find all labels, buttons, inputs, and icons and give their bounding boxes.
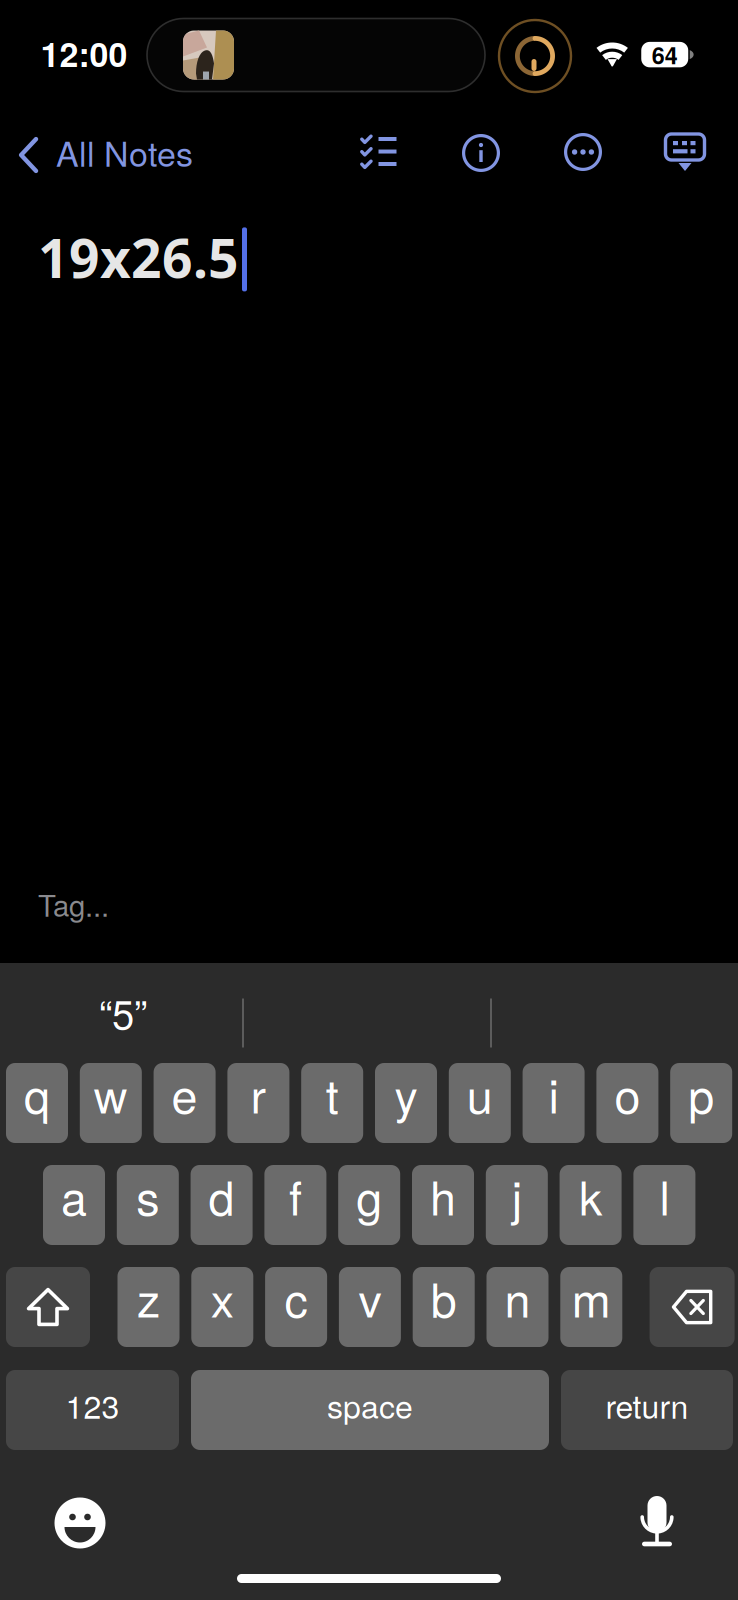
button[interactable]: f [264, 1165, 326, 1245]
button[interactable]: c [265, 1267, 327, 1347]
button[interactable]: e [154, 1063, 216, 1143]
staticText: f [289, 1162, 302, 1229]
staticText: l [659, 1162, 669, 1229]
button[interactable]: h [412, 1165, 474, 1245]
button[interactable]: Info [447, 121, 515, 185]
button[interactable]: y [375, 1063, 437, 1143]
button[interactable]: g [338, 1165, 400, 1245]
staticText: return [605, 1382, 688, 1428]
staticText: 19x26.5 [38, 222, 239, 293]
button[interactable]: t [301, 1063, 363, 1143]
button[interactable]: Checklist [345, 120, 413, 184]
staticText: w [94, 1060, 128, 1127]
staticText: v [358, 1264, 381, 1331]
staticText: r [250, 1060, 266, 1127]
button[interactable]: z [117, 1267, 179, 1347]
button[interactable]: u [449, 1063, 511, 1143]
staticText: 123 [65, 1382, 119, 1428]
staticText: q [24, 1060, 50, 1127]
button[interactable]: s [117, 1165, 179, 1245]
button[interactable]: v [339, 1267, 401, 1347]
button[interactable]: m [560, 1267, 622, 1347]
staticText: j [512, 1162, 522, 1229]
staticText: 64 [652, 38, 678, 71]
button[interactable]: n [486, 1267, 548, 1347]
staticText: h [430, 1162, 456, 1229]
button[interactable]: More [549, 120, 617, 184]
staticText: k [579, 1162, 602, 1229]
button[interactable]: 123 [6, 1370, 179, 1450]
button[interactable]: k [560, 1165, 622, 1245]
staticText: “5” [99, 983, 147, 1041]
button[interactable]: p [670, 1063, 732, 1143]
button[interactable]: Dictate [624, 1490, 690, 1556]
button[interactable]: space [191, 1370, 549, 1450]
staticText: n [504, 1264, 530, 1331]
staticText: e [172, 1060, 198, 1127]
staticText: c [285, 1264, 308, 1331]
staticText: g [356, 1162, 382, 1229]
staticText: All Notes [56, 128, 193, 176]
button[interactable]: x [191, 1267, 253, 1347]
staticText: d [209, 1162, 235, 1229]
staticText: x [211, 1264, 234, 1331]
button[interactable]: “5” [0, 987, 246, 1059]
staticText: space [327, 1382, 413, 1428]
button[interactable]: All Notes [18, 122, 248, 188]
staticText: m [572, 1264, 611, 1331]
staticText: s [136, 1162, 159, 1229]
button[interactable]: b [413, 1267, 475, 1347]
staticText: z [137, 1264, 160, 1331]
staticText: Tag... [38, 883, 109, 925]
button[interactable]: r [227, 1063, 289, 1143]
staticText: t [326, 1060, 339, 1127]
staticText: o [614, 1060, 640, 1127]
button[interactable]: Hide Keyboard [651, 121, 719, 185]
staticText: b [431, 1264, 457, 1331]
button[interactable] [246, 987, 492, 1059]
staticText: p [688, 1060, 714, 1127]
button[interactable]: d [191, 1165, 253, 1245]
button[interactable]: return [561, 1370, 733, 1450]
staticText: u [467, 1060, 493, 1127]
staticText: i [549, 1060, 559, 1127]
staticText: 12:00 [40, 29, 127, 77]
staticText: a [61, 1162, 87, 1229]
button[interactable]: Delete [650, 1267, 735, 1347]
button[interactable]: Shift [6, 1267, 90, 1347]
button[interactable]: w [80, 1063, 142, 1143]
button[interactable]: l [633, 1165, 695, 1245]
button[interactable]: q [6, 1063, 68, 1143]
button[interactable]: o [596, 1063, 658, 1143]
button[interactable]: i [523, 1063, 585, 1143]
button[interactable]: j [486, 1165, 548, 1245]
staticText: y [394, 1060, 417, 1127]
button[interactable]: a [43, 1165, 105, 1245]
button[interactable]: Emoji [47, 1490, 113, 1556]
